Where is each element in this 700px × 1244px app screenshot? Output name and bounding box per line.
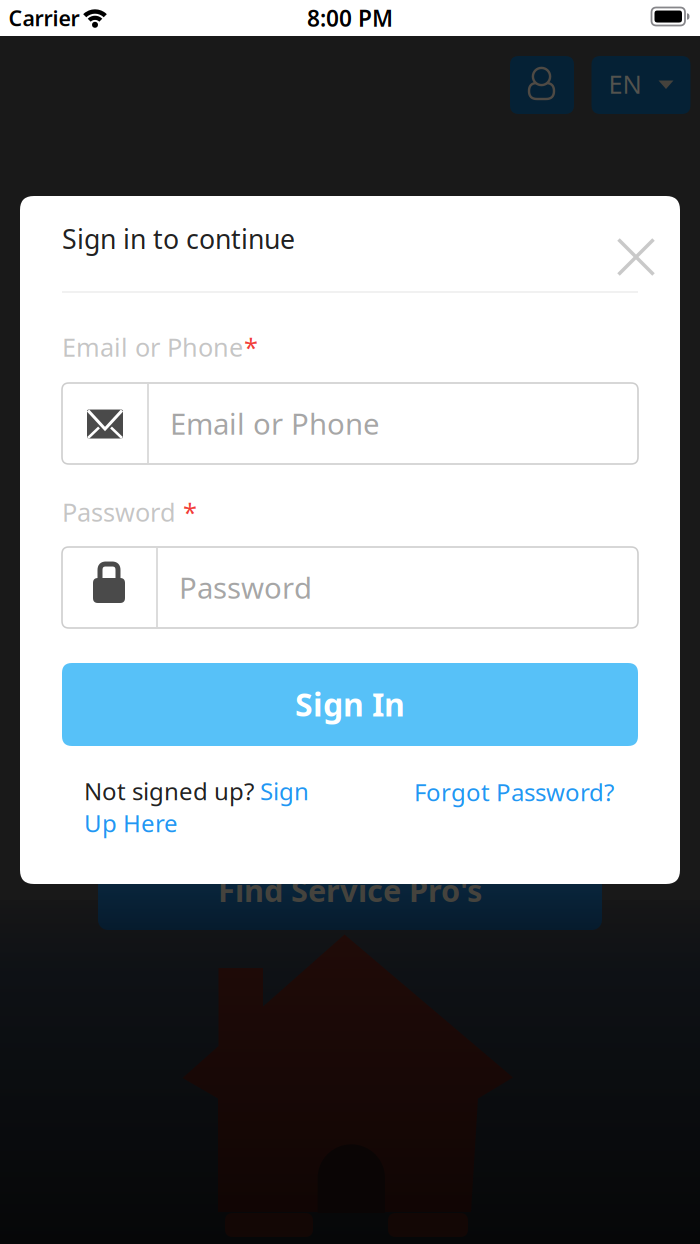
staticText: EN	[608, 67, 641, 101]
staticText: Email or Phone	[62, 330, 243, 364]
staticText: Up Here	[84, 807, 178, 839]
staticText: Find Service Pro's	[218, 870, 482, 910]
staticText: Carrier	[8, 4, 79, 32]
staticText: Forgot Password?	[414, 776, 614, 808]
staticText: *	[183, 495, 197, 529]
staticText: Sign in to continue	[62, 221, 295, 256]
staticText: Password	[62, 495, 176, 529]
staticText: Sign	[260, 775, 309, 807]
staticText: Email or Phone	[170, 404, 380, 443]
staticText: 8:00 PM	[307, 3, 393, 33]
staticText: Password	[179, 568, 312, 607]
staticText: Sign In	[295, 683, 405, 725]
staticText: *	[244, 330, 258, 364]
staticText: Not signed up?	[84, 775, 260, 807]
